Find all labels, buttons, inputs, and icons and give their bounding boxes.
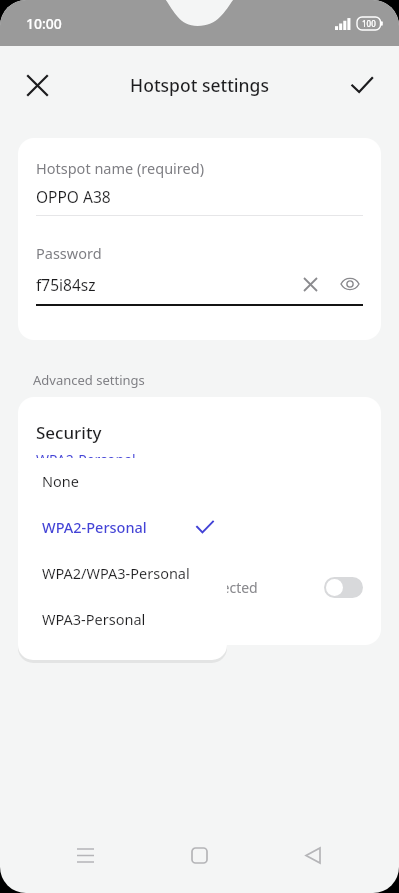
button[interactable]: Confirm (339, 62, 385, 108)
button[interactable]: Notify me when device connected (36, 565, 363, 609)
staticText: Advanced settings (33, 371, 145, 389)
button[interactable]: WPA2/WPA3-Personal (18, 550, 227, 596)
staticText: WPA2-Personal (36, 450, 136, 469)
staticText: 100 (362, 18, 376, 29)
staticText: Hotspot name (required) (36, 158, 204, 178)
staticText: WPA2/WPA3-Personal (42, 563, 190, 583)
button[interactable]: Hotspot name (required) (36, 158, 363, 216)
staticText: f75i84sz (36, 274, 96, 295)
staticText: Notify me when device connected (36, 578, 258, 597)
button[interactable]: Security (36, 421, 363, 469)
button[interactable]: Clear password (297, 271, 323, 297)
button[interactable]: Home (171, 827, 227, 883)
staticText: WPA2-Personal (42, 517, 147, 537)
button[interactable]: Close (14, 62, 60, 108)
button[interactable]: WPA3-Personal (18, 596, 227, 642)
staticText: 10:00 (26, 14, 62, 33)
button[interactable]: WPA2-Personal (18, 504, 227, 550)
staticText: WPA3-Personal (42, 609, 146, 629)
button[interactable]: Recent apps (57, 827, 113, 883)
staticText: Security (36, 421, 102, 444)
staticText: OPPO A38 (36, 186, 111, 207)
staticText: Password (36, 243, 102, 263)
staticText: None (42, 471, 79, 491)
button[interactable]: Back (285, 827, 341, 883)
button[interactable]: Show password (337, 271, 363, 297)
staticText: Hotspot settings (130, 73, 269, 97)
button[interactable]: None (18, 458, 227, 504)
button[interactable]: Password (36, 243, 363, 306)
